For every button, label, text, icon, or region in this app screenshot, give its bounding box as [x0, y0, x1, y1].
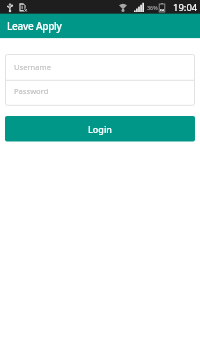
- staticText: Leave Apply: [7, 19, 62, 33]
- staticText: Password: [14, 86, 49, 96]
- staticText: 19:04: [173, 1, 198, 14]
- button[interactable]: Password: [5, 80, 195, 105]
- staticText: Login: [88, 123, 112, 135]
- staticText: Username: [14, 62, 51, 72]
- button[interactable]: Username: [5, 54, 195, 80]
- button[interactable]: Login: [5, 116, 195, 142]
- staticText: 36%: [147, 4, 158, 11]
